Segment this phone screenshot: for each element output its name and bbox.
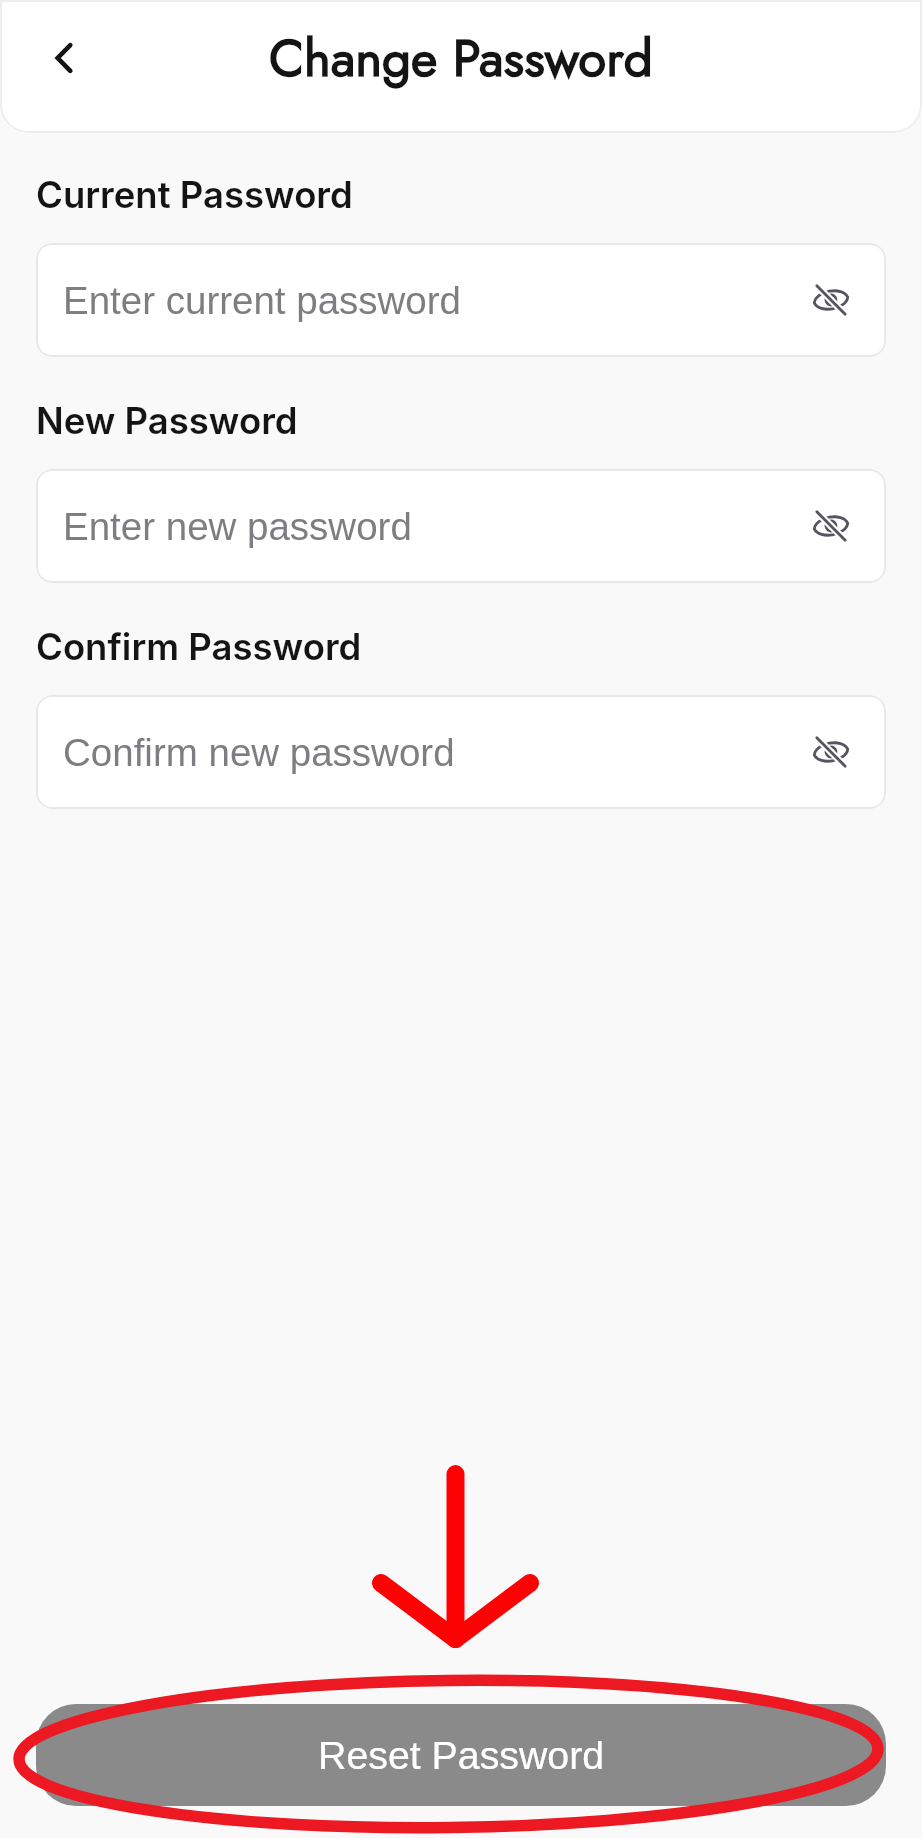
staticText: New Password <box>36 399 298 443</box>
staticText: Enter new password <box>63 505 412 548</box>
button[interactable]: Back <box>22 16 106 100</box>
button[interactable]: Toggle password visibility <box>796 265 866 335</box>
button[interactable]: Reset Password <box>36 1704 886 1806</box>
staticText: Enter current password <box>63 279 462 322</box>
button[interactable]: Toggle password visibility <box>796 717 866 787</box>
staticText: Confirm Password <box>36 625 362 669</box>
button[interactable]: Enter new password <box>36 469 886 583</box>
staticText: Confirm new password <box>63 731 455 774</box>
staticText: Reset Password <box>318 1733 605 1777</box>
button[interactable]: Toggle password visibility <box>796 491 866 561</box>
staticText: Current Password <box>36 173 353 217</box>
button[interactable]: Confirm new password <box>36 695 886 809</box>
staticText: Change Password <box>269 21 653 95</box>
button[interactable]: Enter current password <box>36 243 886 357</box>
